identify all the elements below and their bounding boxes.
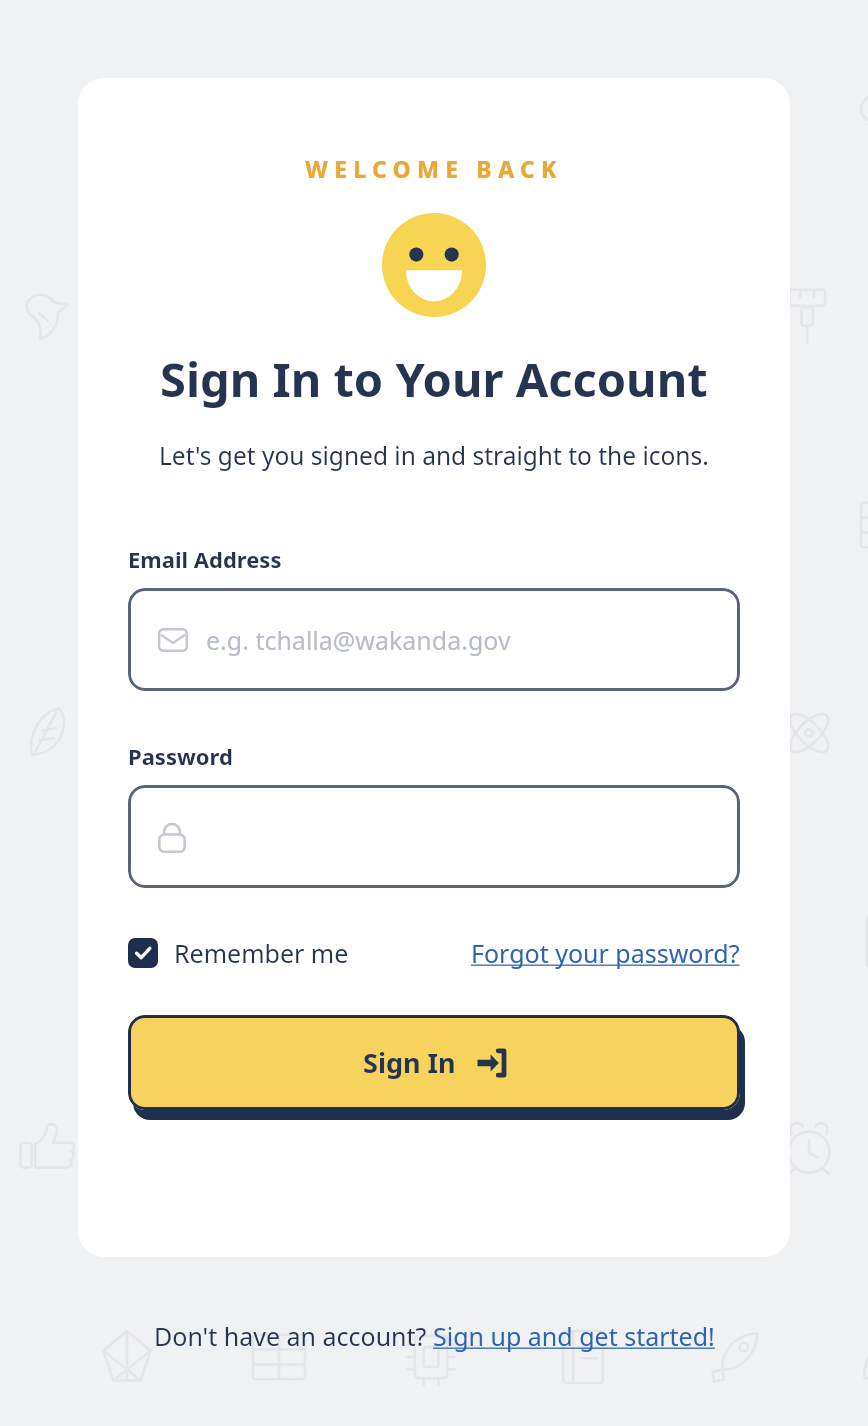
button[interactable]: Forgot your password?: [471, 936, 740, 970]
staticText: Email Address: [128, 544, 282, 574]
button[interactable]: e.g. tchalla@wakanda.gov: [128, 588, 740, 691]
staticText: WELCOME BACK: [305, 153, 563, 184]
staticText: Sign In: [363, 1044, 456, 1081]
staticText: Forgot your password?: [471, 936, 740, 970]
staticText: Let's get you signed in and straight to …: [159, 439, 709, 472]
button[interactable]: Remember me: [128, 936, 355, 970]
staticText: e.g. tchalla@wakanda.gov: [206, 623, 511, 657]
staticText: Password: [128, 741, 233, 771]
button[interactable]: [128, 785, 740, 888]
staticText: Don't have an account?: [154, 1319, 433, 1353]
button[interactable]: Sign In: [128, 1015, 740, 1110]
staticText: Remember me: [174, 936, 349, 970]
staticText: Sign up and get started!: [433, 1319, 715, 1353]
button[interactable]: Sign up and get started!: [433, 1319, 715, 1353]
staticText: Sign In to Your Account: [160, 347, 708, 411]
